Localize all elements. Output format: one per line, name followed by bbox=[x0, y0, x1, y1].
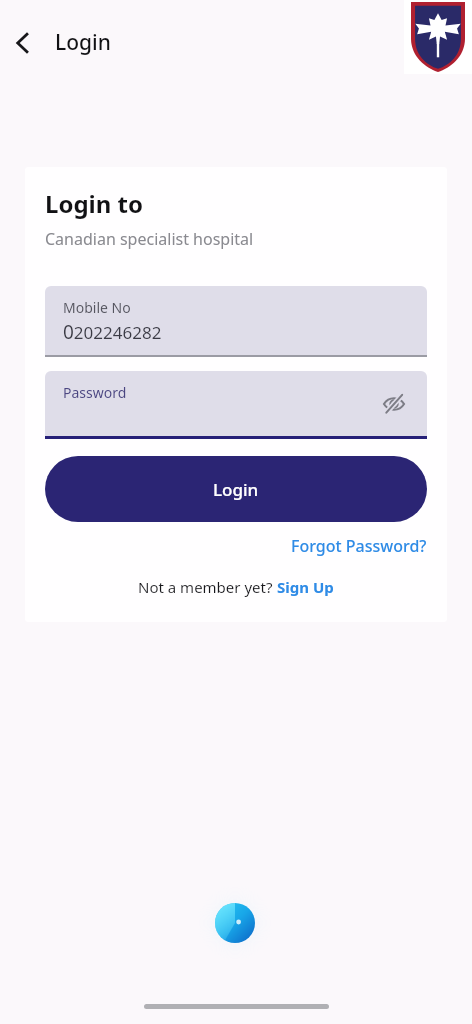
staticText: Login bbox=[55, 28, 111, 57]
staticText: Login to bbox=[45, 187, 144, 220]
button[interactable]: Sign Up bbox=[277, 577, 334, 597]
button[interactable]: Mobile No bbox=[45, 286, 427, 357]
button[interactable]: Assistant bbox=[195, 883, 275, 963]
staticText: Sign Up bbox=[277, 577, 334, 597]
button[interactable]: Back bbox=[2, 22, 44, 64]
button[interactable]: Password bbox=[45, 371, 427, 439]
button[interactable]: Forgot Password? bbox=[291, 535, 427, 557]
staticText: Login bbox=[213, 478, 259, 501]
staticText: Mobile No bbox=[63, 298, 131, 317]
staticText: Not a member yet? bbox=[138, 577, 277, 597]
button[interactable]: Login bbox=[45, 456, 427, 522]
staticText: Forgot Password? bbox=[291, 535, 427, 557]
staticText: 0202246282 bbox=[63, 319, 162, 345]
button[interactable]: Show password bbox=[377, 387, 411, 421]
staticText: Canadian specialist hospital bbox=[45, 228, 254, 250]
staticText: Password bbox=[63, 383, 127, 402]
